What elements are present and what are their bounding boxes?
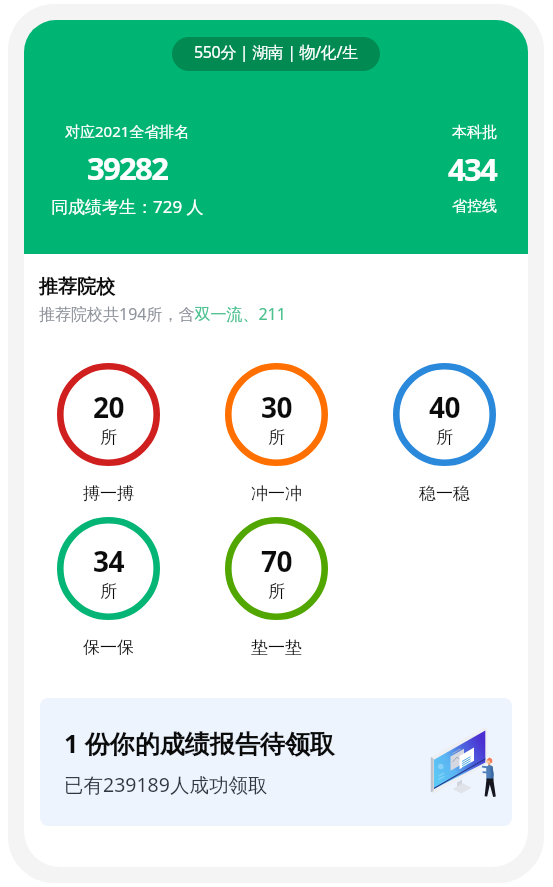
staticText: 本科批 <box>452 123 497 142</box>
staticText: 推荐院校 <box>39 275 115 299</box>
button[interactable]: 1 份你的成绩报告待领取 <box>40 698 512 826</box>
staticText: 所 <box>268 427 285 448</box>
staticText: 省控线 <box>452 197 497 216</box>
staticText: 550分 | 湖南 | 物/化/生 <box>194 41 358 63</box>
button[interactable]: 70 <box>225 517 328 620</box>
staticText: 保一保 <box>83 637 134 658</box>
staticText: 34 <box>93 542 124 580</box>
staticText: 1 份你的成绩报告待领取 <box>64 726 335 760</box>
button[interactable]: 550分 | 湖南 | 物/化/生 <box>172 37 380 71</box>
staticText: 冲一冲 <box>251 483 302 504</box>
staticText: 所 <box>100 427 117 448</box>
staticText: 39282 <box>87 147 168 189</box>
button[interactable]: 30 <box>225 363 328 466</box>
staticText: 推荐院校共194所，含双一流、211 <box>39 303 286 325</box>
staticText: 同成绩考生：729 人 <box>51 195 204 218</box>
staticText: 所 <box>100 581 117 602</box>
staticText: 20 <box>93 388 124 426</box>
staticText: 70 <box>261 542 292 580</box>
staticText: 垫一垫 <box>251 637 302 658</box>
staticText: 434 <box>448 148 497 190</box>
button[interactable]: 20 <box>57 363 160 466</box>
staticText: 所 <box>436 427 453 448</box>
staticText: 稳一稳 <box>419 483 470 504</box>
staticText: 搏一搏 <box>83 483 134 504</box>
button[interactable]: 40 <box>393 363 496 466</box>
staticText: 40 <box>429 388 460 426</box>
staticText: 对应2021全省排名 <box>65 121 190 141</box>
staticText: 所 <box>268 581 285 602</box>
staticText: 已有239189人成功领取 <box>64 771 268 798</box>
button[interactable]: 34 <box>57 517 160 620</box>
staticText: 30 <box>261 388 292 426</box>
